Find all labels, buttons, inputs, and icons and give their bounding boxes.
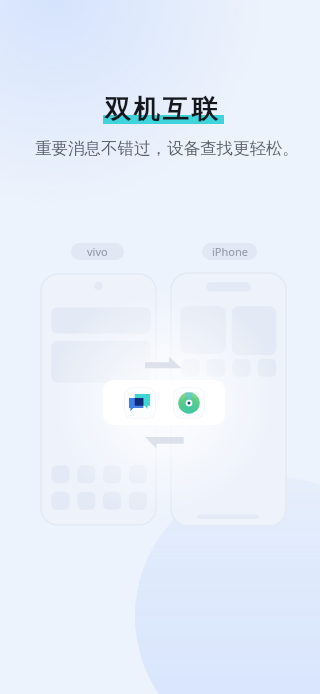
staticText: 重要消息不错过，设备查找更轻松。 bbox=[35, 138, 299, 159]
button[interactable]: Find My bbox=[173, 387, 205, 419]
staticText: vivo bbox=[87, 244, 108, 259]
staticText: iPhone bbox=[212, 244, 248, 259]
button[interactable]: Messages bbox=[124, 387, 156, 419]
staticText: 双机互联 bbox=[103, 93, 219, 126]
button[interactable]: Connected apps bbox=[103, 380, 225, 425]
button[interactable]: vivo bbox=[71, 243, 124, 260]
button[interactable]: iPhone bbox=[202, 243, 257, 260]
